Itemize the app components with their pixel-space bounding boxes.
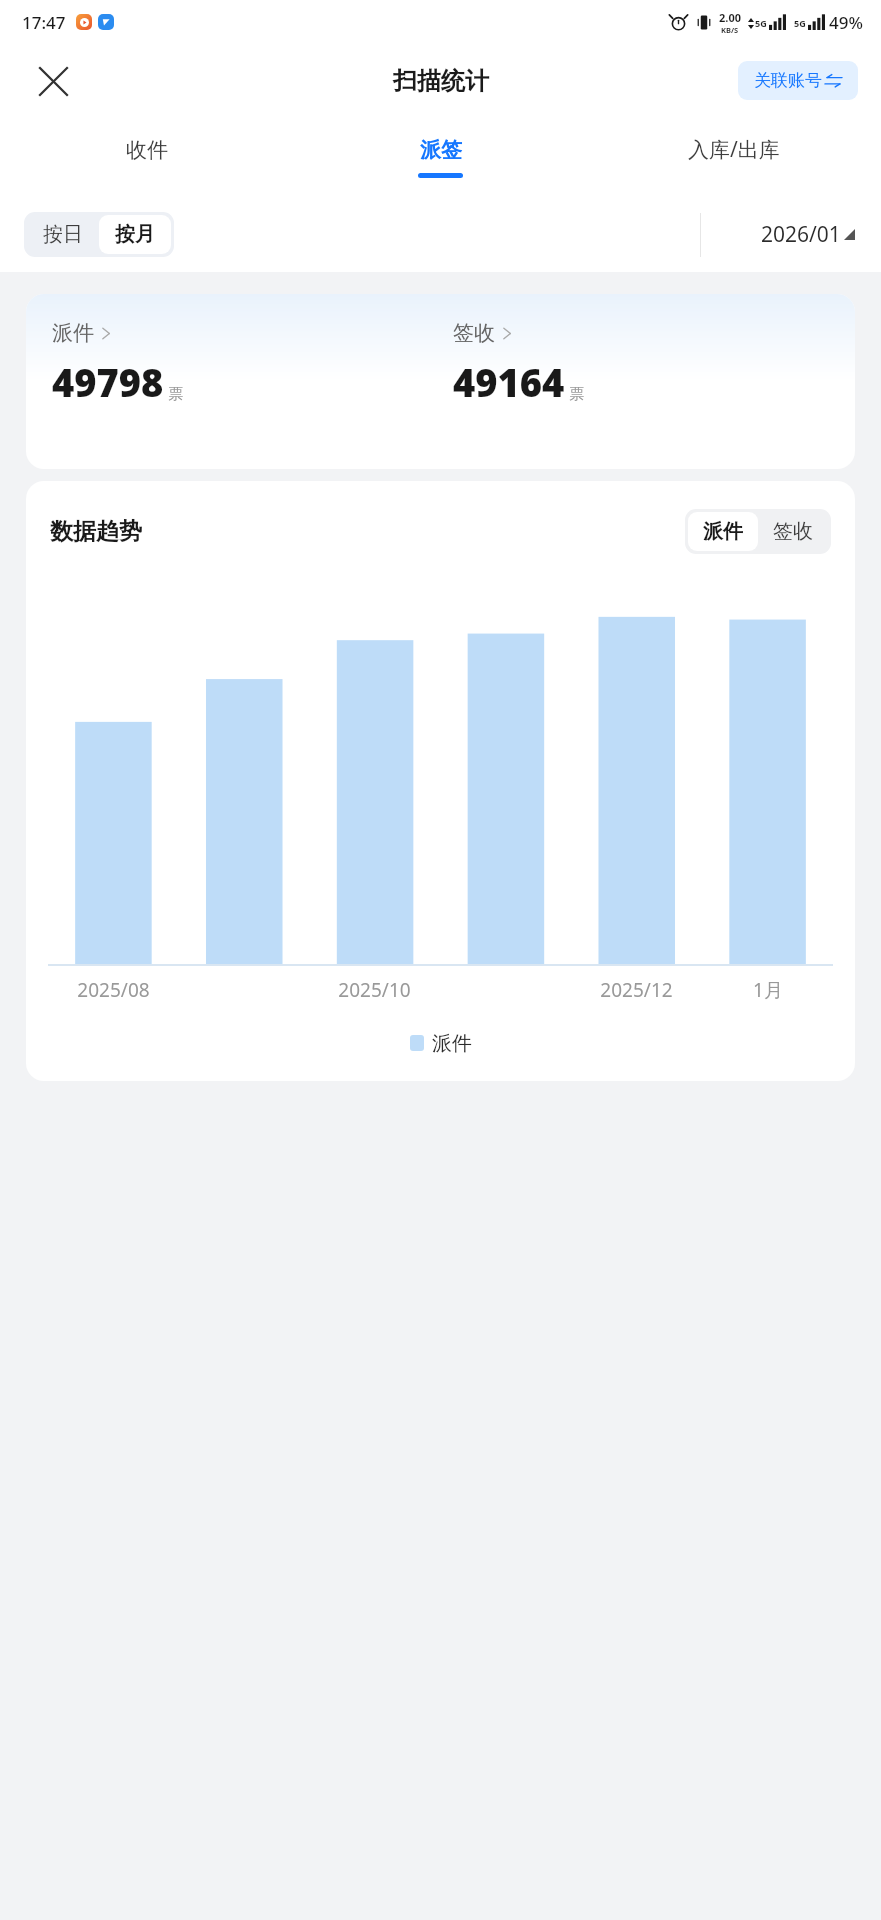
staticText: 49798 bbox=[52, 356, 164, 408]
button[interactable]: 派签 bbox=[293, 117, 587, 197]
staticText: 5G bbox=[755, 17, 767, 29]
staticText: 扫描统计 bbox=[393, 66, 489, 96]
staticText: 2026/01 bbox=[761, 220, 841, 249]
button[interactable]: 派件 bbox=[688, 512, 758, 551]
staticText: 17:47 bbox=[22, 11, 66, 34]
button[interactable]: 按日 bbox=[27, 215, 99, 254]
staticText: 2025/08 bbox=[77, 977, 150, 1003]
button[interactable]: 签收 bbox=[453, 320, 855, 408]
button[interactable]: 签收 bbox=[758, 512, 828, 551]
staticText: 票 bbox=[168, 385, 183, 404]
button[interactable]: 2026/01 bbox=[755, 214, 861, 255]
staticText: 收件 bbox=[126, 137, 168, 163]
button[interactable]: 收件 bbox=[0, 117, 293, 197]
button[interactable]: Close bbox=[30, 58, 76, 104]
button[interactable]: 派件 bbox=[52, 320, 453, 408]
staticText: 入库/出库 bbox=[688, 135, 780, 164]
staticText: KB/S bbox=[721, 25, 739, 35]
button[interactable]: 关联账号 bbox=[738, 61, 858, 100]
staticText: 1月 bbox=[753, 977, 783, 1003]
staticText: 派件 bbox=[52, 320, 94, 346]
staticText: 派签 bbox=[420, 137, 462, 163]
staticText: 49164 bbox=[453, 356, 565, 408]
staticText: 派件 bbox=[432, 1031, 472, 1056]
staticText: 2025/10 bbox=[338, 977, 411, 1003]
staticText: 票 bbox=[569, 385, 584, 404]
staticText: 49% bbox=[829, 11, 863, 34]
staticText: 派件 bbox=[703, 519, 743, 544]
staticText: 按月 bbox=[115, 222, 155, 247]
button[interactable]: 入库/出库 bbox=[587, 117, 881, 197]
staticText: 5G bbox=[794, 17, 806, 29]
staticText: 数据趋势 bbox=[50, 517, 142, 546]
staticText: 关联账号 bbox=[754, 70, 822, 91]
button[interactable]: 按月 bbox=[99, 215, 171, 254]
staticText: 签收 bbox=[453, 320, 495, 346]
staticText: 签收 bbox=[773, 519, 813, 544]
staticText: 2.00 bbox=[719, 10, 741, 25]
staticText: 2025/12 bbox=[600, 977, 673, 1003]
staticText: 按日 bbox=[43, 222, 83, 247]
